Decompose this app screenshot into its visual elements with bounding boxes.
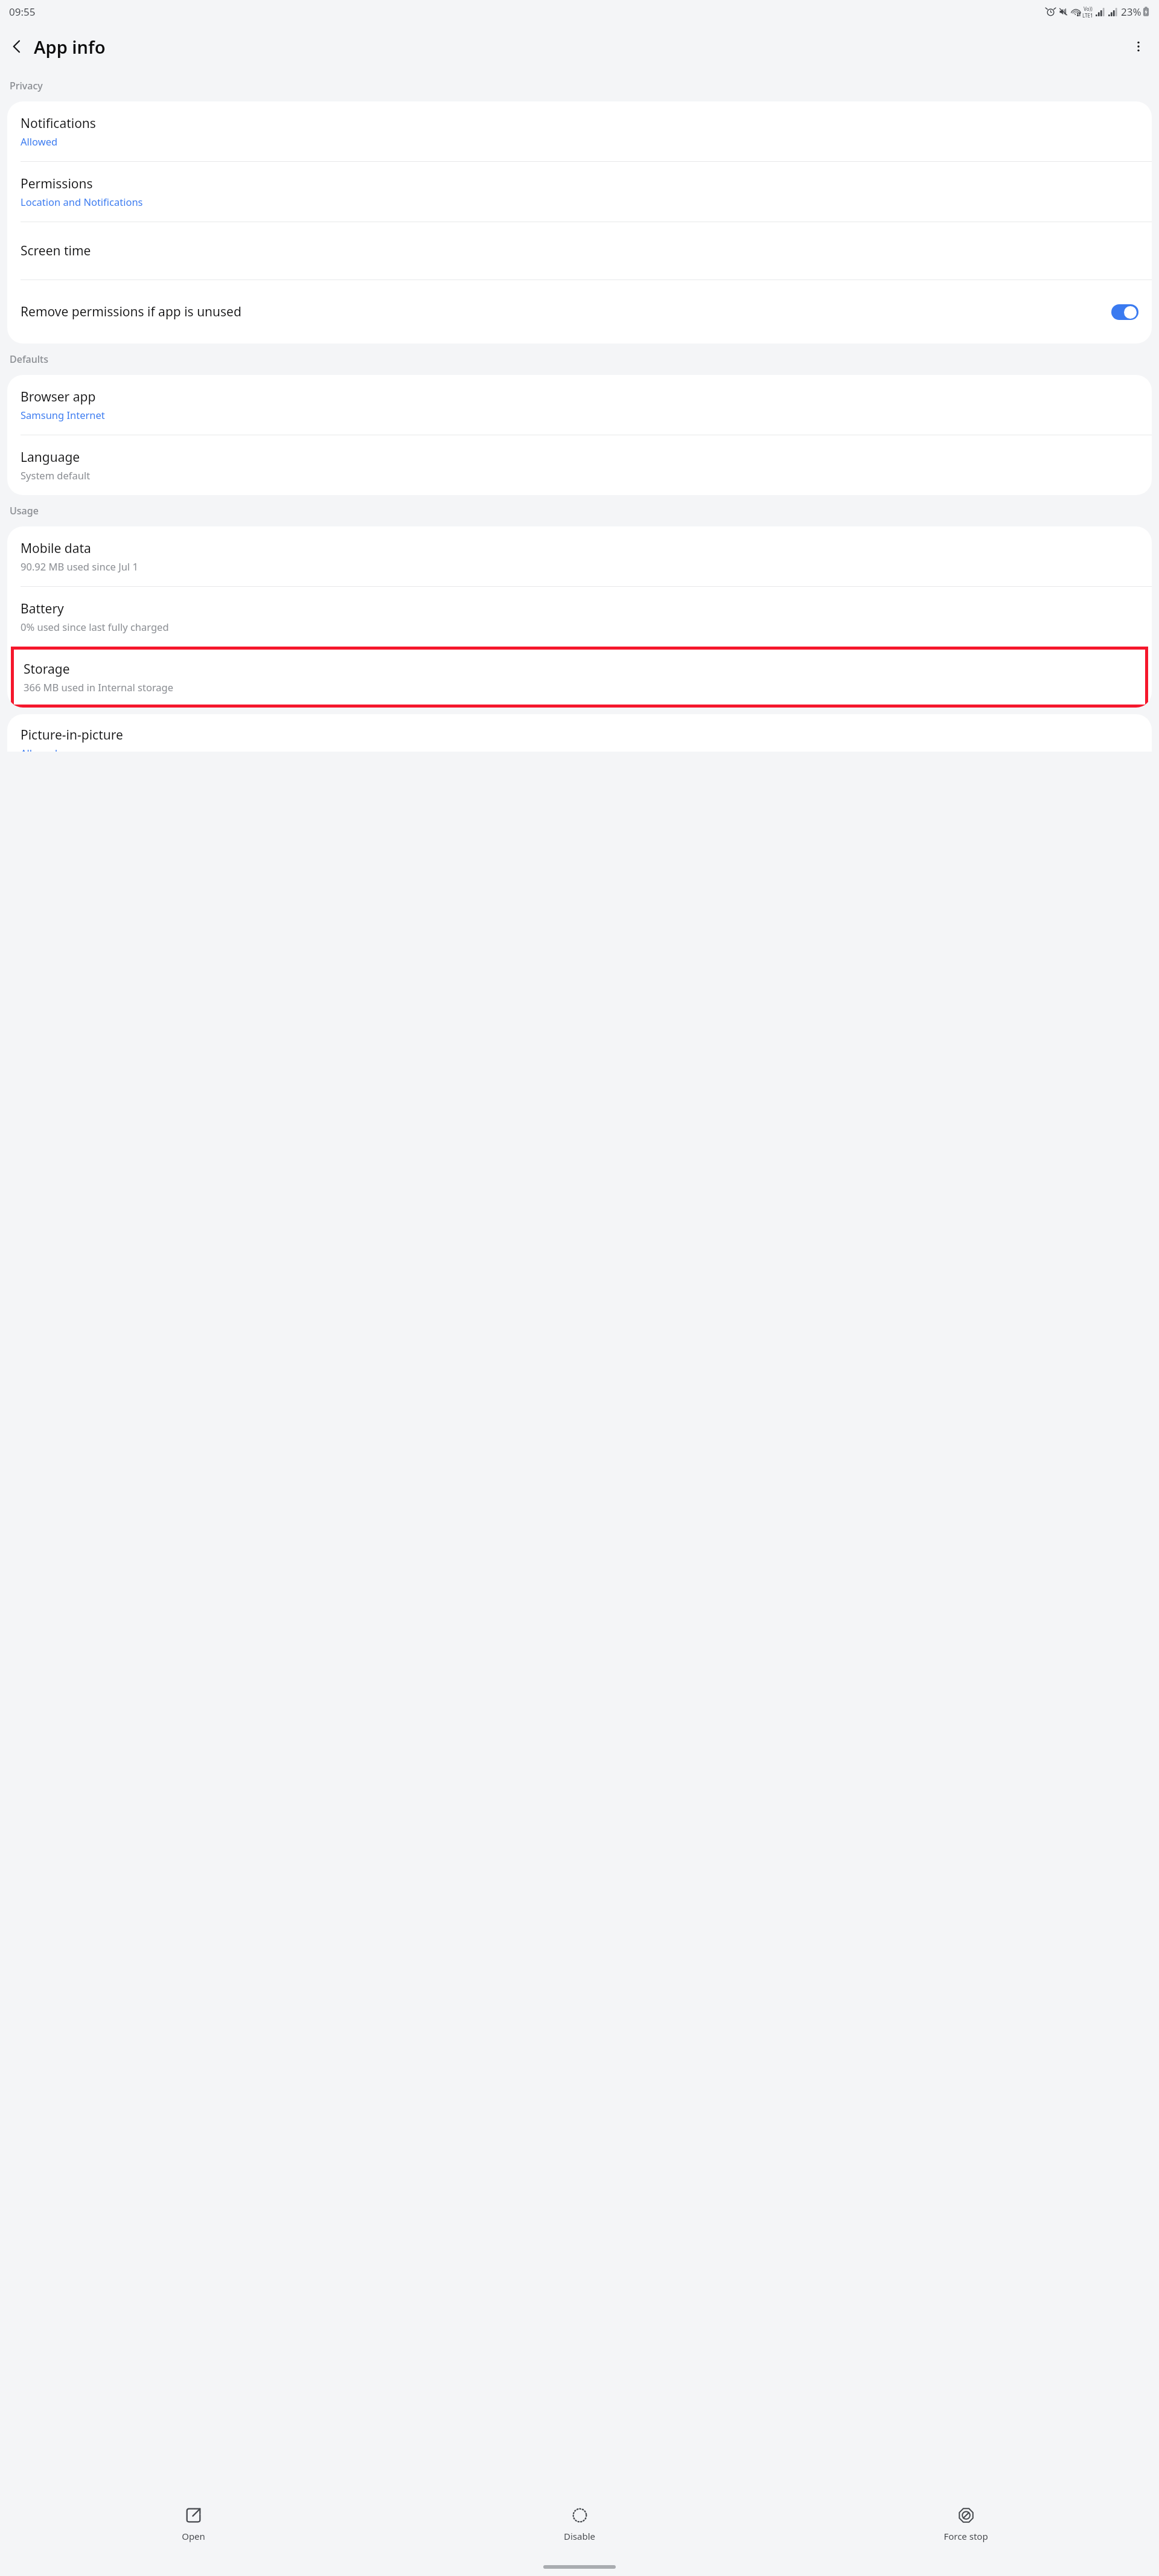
button[interactable]: Picture-in-picture (7, 714, 1152, 752)
button[interactable]: Remove permissions if app is unused (7, 280, 1152, 344)
button[interactable]: Permissions (7, 162, 1152, 222)
staticText: 0% used since last fully charged (21, 620, 169, 633)
staticText: Battery (21, 600, 64, 618)
staticText: Picture-in-picture (21, 726, 123, 744)
staticText: Storage (24, 660, 70, 678)
button[interactable]: Screen time (7, 222, 1152, 280)
staticText: 09:55 (9, 5, 36, 19)
button[interactable]: Force stop (773, 2491, 1159, 2558)
staticText: Allowed (21, 135, 58, 148)
staticText: Disable (564, 2530, 595, 2542)
staticText: Mobile data (21, 540, 91, 557)
staticText: Samsung Internet (21, 408, 105, 421)
staticText: App info (34, 35, 106, 59)
staticText: 90.92 MB used since Jul 1 (21, 560, 138, 573)
staticText: Language (21, 449, 80, 466)
staticText: Remove permissions if app is unused (21, 303, 1111, 321)
staticText: Notifications (21, 115, 96, 132)
staticText: LTE1 (1082, 12, 1093, 19)
staticText: System default (21, 468, 91, 482)
staticText: Browser app (21, 388, 96, 406)
staticText: Permissions (21, 175, 93, 193)
staticText: Screen time (21, 242, 91, 260)
staticText: Usage (10, 504, 39, 517)
button[interactable]: Storage (14, 650, 1145, 705)
staticText: Vo)) (1084, 5, 1093, 12)
staticText: Defaults (10, 353, 49, 366)
staticText: Location and Notifications (21, 195, 143, 208)
staticText: 23% (1121, 5, 1141, 19)
button[interactable]: Back (0, 30, 34, 63)
staticText: Privacy (10, 79, 43, 92)
staticText: Force stop (943, 2530, 988, 2542)
button[interactable]: Mobile data (7, 526, 1152, 586)
button[interactable]: Disable (386, 2491, 773, 2558)
button[interactable]: Battery (7, 587, 1152, 647)
staticText: 366 MB used in Internal storage (24, 680, 174, 694)
button[interactable]: Language (7, 435, 1152, 495)
staticText: Open (182, 2530, 205, 2542)
button[interactable]: Notifications (7, 101, 1152, 161)
button[interactable]: Open (0, 2491, 386, 2558)
button[interactable]: More options (1123, 31, 1154, 62)
staticText: Allowed (21, 746, 58, 752)
button[interactable]: Browser app (7, 375, 1152, 435)
